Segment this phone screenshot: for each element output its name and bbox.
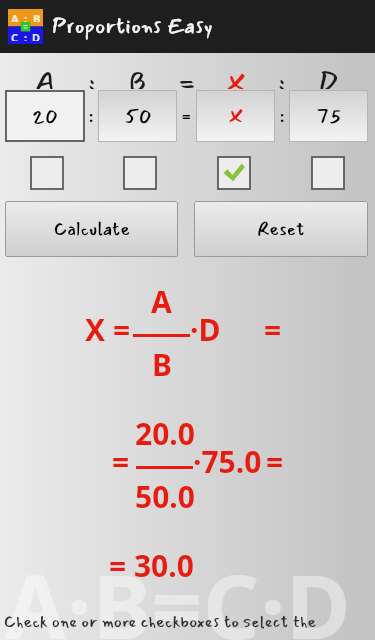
staticText: C [11,30,19,41]
button[interactable]: Checked checkbox [218,157,250,189]
staticText: B [129,61,147,89]
staticText: Check one or more checkboxes to select t… [4,609,317,635]
staticText: = [264,309,282,350]
staticText: B [152,344,172,385]
staticText: : [88,61,96,89]
staticText: ·D [190,309,221,350]
staticText: : [24,11,28,22]
staticText: 50 [124,100,152,133]
staticText: 50.0 [135,476,195,517]
staticText: Reset [257,215,305,243]
staticText: 75 [316,100,342,133]
button[interactable]: Checkbox [124,157,156,189]
button[interactable]: Calculate [5,201,178,257]
staticText: : [24,30,28,41]
staticText: 20 [32,100,58,133]
staticText: Calculate [54,215,130,243]
staticText: ·75.0 [193,441,262,482]
staticText: = [266,441,284,482]
staticText: A [151,281,172,322]
button[interactable]: 20 [5,90,85,142]
staticText: = [112,441,130,482]
staticText: A·B=C·D [5,545,352,640]
button[interactable]: Checkbox [312,157,344,189]
button[interactable]: X [196,90,275,142]
button[interactable]: Checkbox [31,157,63,189]
staticText: X [226,61,246,89]
staticText: : [280,106,285,126]
staticText: = [178,61,196,89]
button[interactable]: Reset [194,201,368,257]
staticText: Proportions Easy [52,10,213,43]
staticText: D [32,30,41,41]
staticText: 20.0 [135,413,195,454]
staticText: : [89,106,94,126]
button[interactable]: 50 [98,90,177,142]
staticText: : [278,61,286,89]
staticText: X = [85,309,131,350]
staticText: X [228,100,244,133]
staticText: D [318,61,339,89]
staticText: A [35,61,55,89]
staticText: B [33,11,41,22]
staticText: = [182,106,191,126]
staticText: = 30.0 [109,545,194,586]
staticText: A [11,11,19,22]
button[interactable]: 75 [289,90,368,142]
